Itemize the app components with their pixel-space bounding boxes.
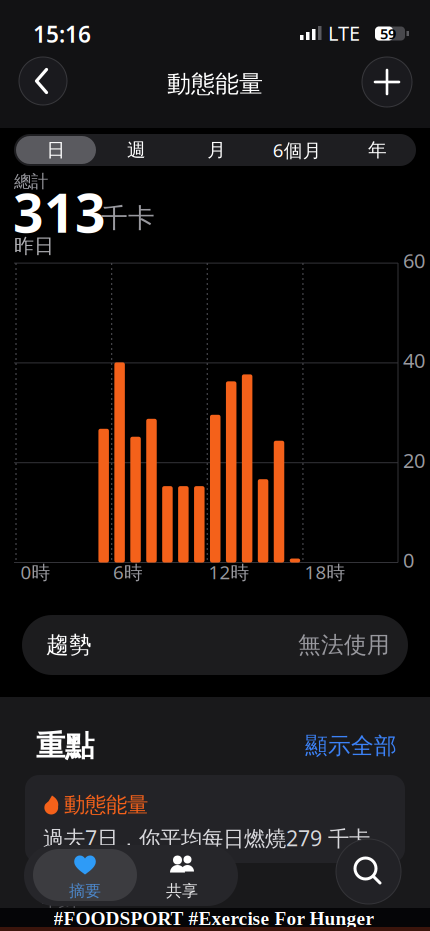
staticText: 動態能量 bbox=[167, 69, 263, 99]
button[interactable]: Back bbox=[19, 57, 67, 105]
button[interactable]: 摘要 bbox=[33, 846, 137, 902]
button[interactable]: 月 bbox=[177, 134, 257, 166]
staticText: 313 bbox=[13, 177, 106, 247]
staticText: 動態能量 bbox=[64, 792, 148, 818]
staticText: 過去7日，你平均每日燃燒279 千卡， bbox=[43, 824, 391, 852]
button[interactable]: 週 bbox=[96, 134, 176, 166]
staticText: 平均 bbox=[42, 892, 76, 914]
staticText: 20 bbox=[403, 447, 425, 473]
staticText: 重點 bbox=[36, 728, 94, 764]
staticText: 千卡 bbox=[101, 202, 155, 234]
staticText: 無法使用 bbox=[298, 631, 390, 659]
staticText: 年 bbox=[368, 138, 387, 161]
staticText: 共享 bbox=[166, 881, 198, 901]
staticText: LTE bbox=[328, 20, 360, 46]
staticText: 12時 bbox=[208, 560, 249, 584]
button[interactable]: 日 bbox=[16, 134, 96, 166]
button[interactable]: 年 bbox=[338, 134, 418, 166]
staticText: 顯示全部 bbox=[305, 732, 397, 760]
button[interactable]: 動態能量 bbox=[25, 775, 405, 863]
staticText: 趨勢 bbox=[46, 631, 92, 659]
staticText: 總計 bbox=[14, 171, 48, 192]
staticText: #FOODSPORT #Exercise For Hunger bbox=[53, 908, 374, 929]
staticText: 月 bbox=[207, 138, 226, 161]
button[interactable]: Add bbox=[362, 57, 412, 107]
staticText: 40 bbox=[403, 347, 425, 374]
staticText: 18時 bbox=[304, 560, 345, 584]
button[interactable]: Search bbox=[336, 839, 401, 904]
staticText: 摘要 bbox=[69, 881, 101, 901]
staticText: 15:16 bbox=[33, 19, 91, 49]
staticText: 6時 bbox=[113, 560, 143, 584]
staticText: 59 bbox=[380, 24, 396, 43]
staticText: 週 bbox=[127, 138, 146, 161]
staticText: 日 bbox=[46, 138, 65, 161]
button[interactable]: 趨勢 bbox=[22, 615, 408, 675]
staticText: 0 bbox=[403, 547, 414, 573]
staticText: 昨日 bbox=[14, 234, 54, 258]
button[interactable]: 顯示全部 bbox=[305, 732, 397, 760]
button[interactable]: 共享 bbox=[132, 846, 232, 902]
button[interactable]: 6個月 bbox=[257, 134, 337, 166]
staticText: 6個月 bbox=[273, 138, 322, 162]
staticText: 0時 bbox=[20, 560, 50, 584]
staticText: 60 bbox=[403, 247, 425, 274]
